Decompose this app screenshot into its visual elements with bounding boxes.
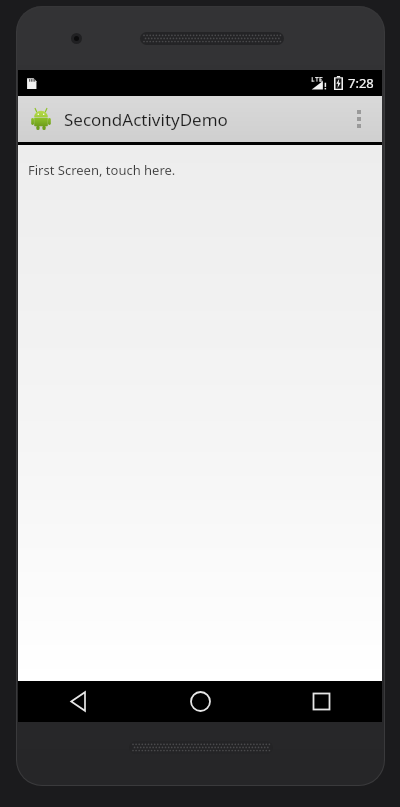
button[interactable]: App icon	[26, 104, 56, 134]
button[interactable]: Back	[18, 681, 140, 722]
staticText: SecondActivityDemo	[64, 108, 228, 131]
staticText: 7:28	[348, 74, 374, 92]
button[interactable]: Recent apps	[261, 681, 382, 722]
staticText: First Screen, touch here.	[28, 161, 176, 179]
button[interactable]: First Screen, touch here.	[18, 145, 382, 681]
button[interactable]: More options	[344, 96, 374, 142]
button[interactable]: Home	[140, 681, 261, 722]
